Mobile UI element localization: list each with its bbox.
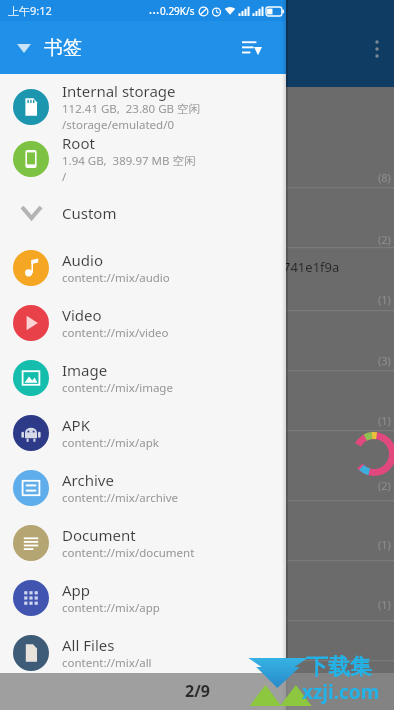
- staticText: 书签: [44, 36, 82, 60]
- staticText: (3): [378, 353, 391, 368]
- staticText: Image: [62, 360, 108, 380]
- staticText: (1): [378, 413, 391, 428]
- staticText: Audio: [62, 250, 104, 270]
- button[interactable]: Archive: [0, 460, 286, 515]
- staticText: (2): [378, 232, 391, 247]
- staticText: Custom: [62, 203, 117, 223]
- staticText: APK: [62, 415, 90, 435]
- staticText: content://mix/video: [62, 325, 169, 341]
- staticText: Root: [62, 133, 95, 153]
- staticText: xzji.com: [302, 679, 380, 705]
- staticText: Internal storage: [62, 81, 176, 101]
- button[interactable]: APK: [0, 405, 286, 460]
- staticText: content://mix/apk: [62, 435, 159, 451]
- staticText: (2): [378, 478, 391, 493]
- staticText: 下载集: [306, 653, 372, 681]
- staticText: Archive: [62, 470, 114, 490]
- staticText: 上午9:12: [8, 3, 52, 18]
- button[interactable]: Internal storage: [0, 81, 286, 133]
- staticText: Document: [62, 525, 136, 545]
- staticText: 741e1f9a: [283, 258, 340, 276]
- button[interactable]: All Files: [0, 625, 286, 680]
- staticText: content://mix/app: [62, 600, 160, 616]
- staticText: (1): [378, 597, 391, 612]
- staticText: Video: [62, 305, 102, 325]
- staticText: (8): [378, 170, 391, 185]
- staticText: content://mix/all: [62, 655, 152, 671]
- button[interactable]: Custom: [0, 185, 286, 240]
- staticText: All Files: [62, 635, 115, 655]
- staticText: 0.29K/s: [160, 4, 195, 18]
- staticText: /: [62, 169, 67, 185]
- button[interactable]: Document: [0, 515, 286, 570]
- button[interactable]: Root: [0, 133, 286, 185]
- staticText: /storage/emulated/0: [62, 117, 175, 133]
- staticText: 2/9: [185, 680, 210, 702]
- staticText: content://mix/audio: [62, 270, 170, 286]
- button[interactable]: Switch list: [10, 34, 38, 62]
- staticText: (1): [378, 292, 391, 307]
- staticText: 1.94 GB, 389.97 MB 空闲: [62, 153, 196, 169]
- staticText: (1): [378, 537, 391, 552]
- staticText: content://mix/image: [62, 380, 173, 396]
- staticText: App: [62, 580, 91, 600]
- button[interactable]: App: [0, 570, 286, 625]
- button[interactable]: Audio: [0, 240, 286, 295]
- staticText: 112.41 GB, 23.80 GB 空闲: [62, 101, 200, 117]
- button[interactable]: Sort: [236, 32, 268, 64]
- staticText: content://mix/archive: [62, 490, 179, 506]
- button[interactable]: Image: [0, 350, 286, 405]
- button[interactable]: Video: [0, 295, 286, 350]
- button[interactable]: More options: [366, 38, 388, 60]
- staticText: content://mix/document: [62, 545, 195, 561]
